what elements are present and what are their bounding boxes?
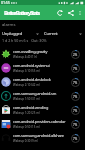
staticText: Current xyxy=(44,31,58,37)
staticText: com.samsung.android.allshare xyxy=(13,133,64,138)
staticText: 1 d 2 h 50 m 6 s Out: 30% xyxy=(2,38,47,43)
button[interactable]: com.android.providers.calendar xyxy=(0,117,85,131)
staticText: Wakeup 3:10 (55 m) xyxy=(13,69,40,73)
staticText: 7% xyxy=(73,81,78,85)
button[interactable]: com.android.vending xyxy=(0,103,85,117)
staticText: Wakeup 0:50 (15 m) xyxy=(13,125,40,129)
staticText: com.android.vending xyxy=(13,105,49,110)
button[interactable]: com.android.deskclock xyxy=(0,75,85,89)
button[interactable]: More options xyxy=(76,9,83,16)
staticText: com.android.deskclock xyxy=(13,77,51,82)
staticText: 7% xyxy=(73,137,78,141)
button[interactable]: Share xyxy=(66,8,75,17)
staticText: 2% xyxy=(73,53,78,57)
staticText: 7% xyxy=(73,95,78,99)
staticText: com.android.systemui xyxy=(13,63,50,68)
button[interactable]: Unplugged xyxy=(0,30,42,38)
staticText: Wakeup 1:50 (31 m) xyxy=(13,97,40,101)
staticText: Unplugged xyxy=(2,31,23,37)
staticText: com.samsung.android.sm xyxy=(13,91,57,96)
button[interactable]: com.ossalling.gravity xyxy=(0,47,85,61)
button[interactable]: com.samsung.android.sm xyxy=(0,89,85,103)
staticText: BetterBatteryStats xyxy=(4,9,40,17)
button[interactable]: Refresh xyxy=(55,8,64,17)
staticText: 7% xyxy=(73,123,78,127)
staticText: 7% xyxy=(73,109,78,113)
staticText: Wakeup 2:10 (42 m) xyxy=(13,83,40,87)
staticText: com.ossalling.gravity xyxy=(13,49,48,54)
staticText: 7% xyxy=(73,67,78,71)
button[interactable]: com.android.systemui xyxy=(0,61,85,75)
staticText: Wakeup 0:30 (9 m) xyxy=(13,139,39,143)
staticText: alarms xyxy=(2,22,16,28)
staticText: Wakeup 4:40 (1 h) xyxy=(13,55,38,59)
staticText: 01:55 xyxy=(1,0,10,5)
button[interactable]: com.samsung.android.allshare xyxy=(0,131,85,145)
button[interactable]: Current xyxy=(42,30,85,38)
staticText: Wakeup 1:20 (25 m) xyxy=(13,111,40,115)
staticText: com.android.providers.calendar xyxy=(13,119,66,124)
